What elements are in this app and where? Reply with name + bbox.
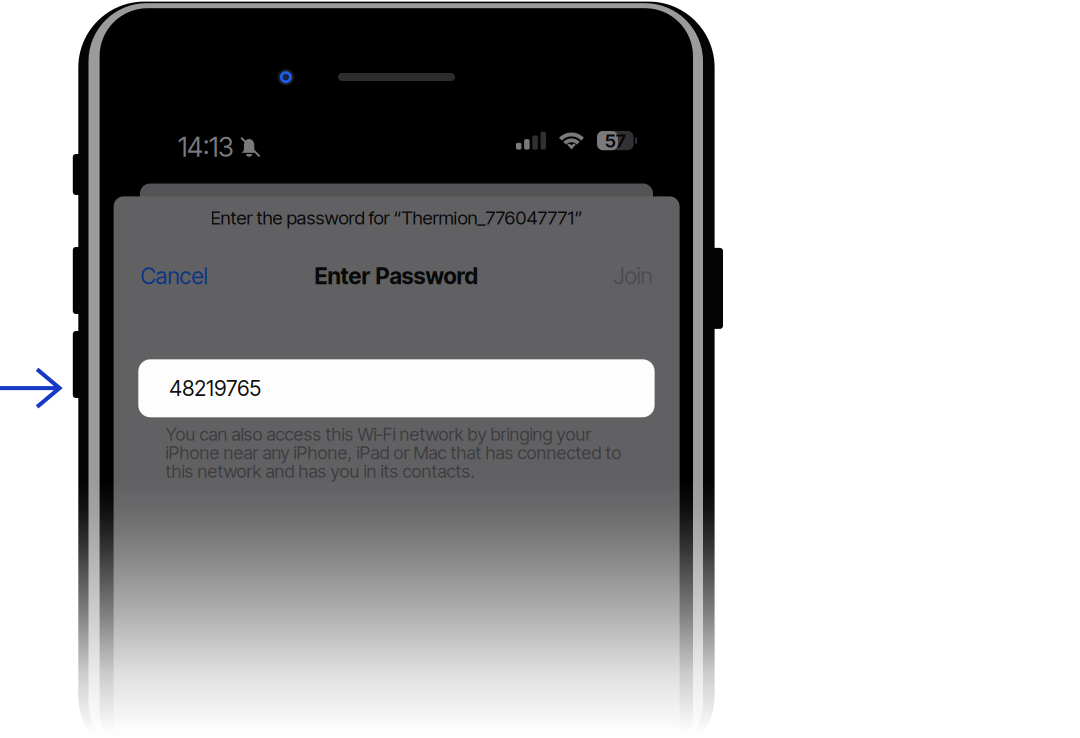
staticText: Cancel [141, 262, 208, 290]
staticText: 48219765 [169, 375, 261, 401]
staticText: 14:13 [178, 131, 234, 163]
button[interactable]: Join [614, 261, 653, 291]
staticText: Enter Password [315, 262, 479, 290]
button[interactable]: 48219765 [138, 359, 655, 417]
staticText: iPhone near any iPhone, iPad or Mac that… [165, 442, 621, 464]
button[interactable]: Cancel [141, 261, 208, 291]
staticText: 57 [605, 129, 626, 152]
staticText: You can also access this Wi‑Fi network b… [165, 423, 591, 445]
staticText: this network and has you in its contacts… [165, 460, 474, 482]
staticText: Enter the password for “Thermion_7760477… [211, 206, 583, 229]
staticText: Join [614, 262, 653, 290]
